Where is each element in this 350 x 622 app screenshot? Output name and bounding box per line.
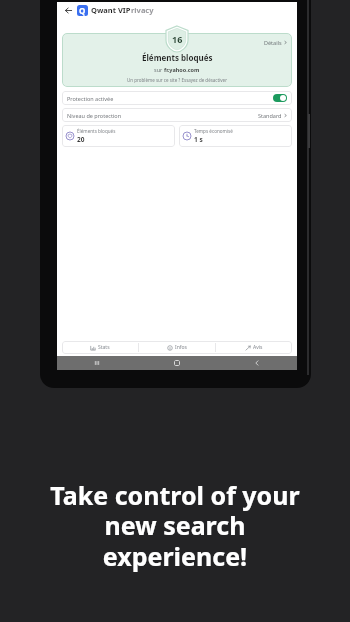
button[interactable]: Stats xyxy=(62,341,138,354)
button[interactable]: Back xyxy=(62,4,74,16)
button[interactable]: Avis xyxy=(216,341,292,354)
staticText: sur xyxy=(154,66,164,73)
staticText: Infos xyxy=(175,344,187,351)
staticText: Avis xyxy=(253,344,263,351)
button[interactable]: Back xyxy=(217,356,297,370)
staticText: Un problème sur ce site ? Essayez de dés… xyxy=(127,77,227,83)
button[interactable]: Éléments bloqués xyxy=(62,125,175,147)
staticText: 20 xyxy=(77,135,85,144)
staticText: Niveau de protection xyxy=(67,112,122,119)
staticText: Protection activée xyxy=(67,95,114,102)
button[interactable]: Infos xyxy=(139,341,215,354)
staticText: Éléments bloqués xyxy=(142,52,213,63)
button[interactable]: Recents xyxy=(57,356,137,370)
staticText: 16 xyxy=(172,33,183,45)
staticText: Take control of your new search experien… xyxy=(50,478,300,574)
button[interactable]: Home xyxy=(137,356,217,370)
staticText: VIP xyxy=(118,5,131,15)
staticText: fr.yahoo.com xyxy=(164,66,200,73)
staticText: Détails xyxy=(264,39,282,46)
button[interactable]: Temps économisé xyxy=(179,125,292,147)
button[interactable]: Détails xyxy=(62,33,292,87)
staticText: Stats xyxy=(98,344,110,351)
button[interactable]: Niveau de protection xyxy=(62,108,292,122)
staticText: rivacy xyxy=(131,5,154,15)
button[interactable]: Détails xyxy=(264,39,287,46)
staticText: Qwant xyxy=(91,5,118,15)
staticText: Temps économisé xyxy=(194,128,233,134)
button[interactable]: Protection activée xyxy=(62,91,292,105)
staticText: Éléments bloqués xyxy=(77,128,116,134)
staticText: Standard xyxy=(258,112,282,119)
staticText: Q xyxy=(79,5,86,16)
staticText: 1 s xyxy=(194,135,203,144)
